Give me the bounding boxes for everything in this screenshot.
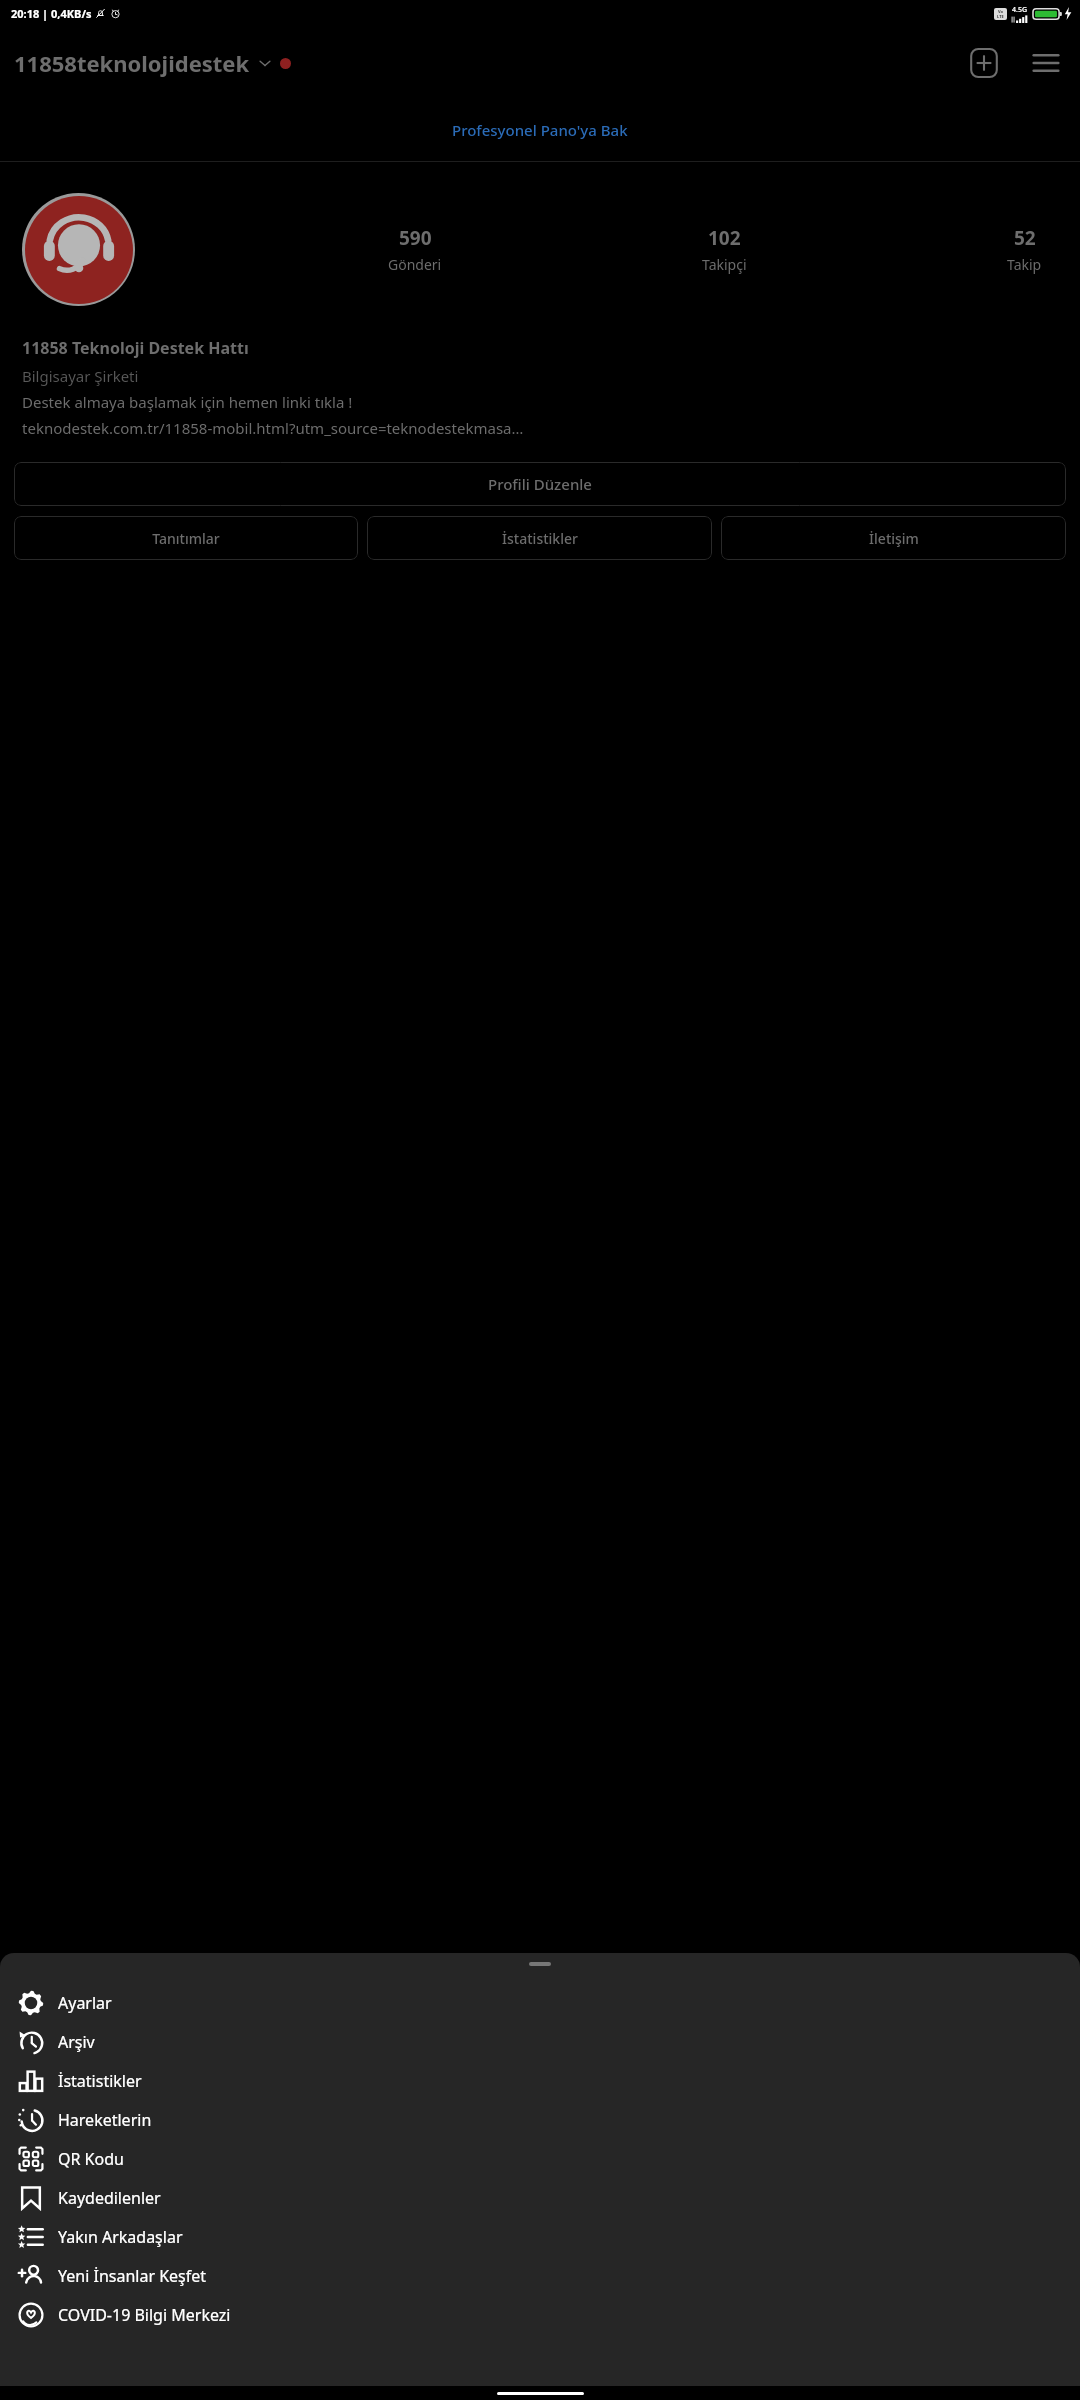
button[interactable] (22, 193, 135, 306)
button[interactable]: 52 (1001, 225, 1048, 274)
button[interactable]: İletişim (721, 516, 1066, 560)
button[interactable]: Profesyonel Pano'ya Bak (0, 99, 1080, 161)
button[interactable]: QR Kodu (0, 2139, 1080, 2178)
staticText: 52 (1014, 225, 1036, 251)
staticText: Kaydedilenler (58, 2187, 161, 2209)
staticText: İstatistikler (502, 529, 578, 548)
button[interactable]: COVID-19 Bilgi Merkezi (0, 2295, 1080, 2334)
button[interactable]: Menü (1026, 43, 1066, 83)
staticText: İstatistikler (58, 2070, 142, 2092)
staticText: Arşiv (58, 2031, 95, 2053)
button[interactable]: Yakın Arkadaşlar (0, 2217, 1080, 2256)
staticText: 4.5G (1012, 5, 1028, 15)
staticText: Hareketlerin (58, 2109, 152, 2131)
staticText: İletişim (869, 529, 919, 548)
staticText: Takip (1007, 255, 1042, 274)
button[interactable]: Arşiv (0, 2022, 1080, 2061)
button[interactable]: Tanıtımlar (14, 516, 358, 560)
staticText: COVID-19 Bilgi Merkezi (58, 2304, 231, 2326)
staticText: Takipçi (702, 255, 747, 274)
staticText: Bilgisayar Şirketi (22, 366, 139, 386)
staticText: 11858teknolojidestek (14, 48, 250, 78)
button[interactable]: Ayarlar (0, 1983, 1080, 2022)
staticText: 20:18 | 0,4KB/s (11, 6, 92, 21)
staticText: LTE (997, 14, 1004, 19)
button[interactable]: Hareketlerin (0, 2100, 1080, 2139)
button[interactable]: Yeni gönderi (964, 43, 1004, 83)
button[interactable]: Yeni İnsanlar Keşfet (0, 2256, 1080, 2295)
staticText: Profesyonel Pano'ya Bak (452, 120, 628, 140)
button[interactable]: İstatistikler (367, 516, 712, 560)
staticText: Profili Düzenle (488, 474, 592, 494)
button[interactable]: 590 (382, 225, 448, 274)
staticText: Vo (998, 9, 1004, 14)
staticText: 11858 Teknoloji Destek Hattı (22, 337, 249, 359)
button[interactable]: Profili Düzenle (14, 462, 1066, 506)
staticText: 590 (399, 225, 432, 251)
staticText: Yakın Arkadaşlar (58, 2226, 183, 2248)
staticText: Gönderi (388, 255, 442, 274)
staticText: Destek almaya başlamak için hemen linki … (22, 392, 353, 412)
staticText: teknodestek.com.tr/11858-mobil.html?utm_… (22, 418, 524, 438)
button[interactable]: İstatistikler (0, 2061, 1080, 2100)
staticText: QR Kodu (58, 2148, 124, 2170)
staticText: Ayarlar (58, 1992, 112, 2014)
button[interactable]: Kaydedilenler (0, 2178, 1080, 2217)
staticText: Tanıtımlar (152, 529, 220, 548)
button[interactable]: 11858teknolojidestek (14, 48, 291, 78)
button[interactable]: 102 (696, 225, 753, 274)
staticText: 102 (708, 225, 741, 251)
staticText: Yeni İnsanlar Keşfet (58, 2265, 207, 2287)
